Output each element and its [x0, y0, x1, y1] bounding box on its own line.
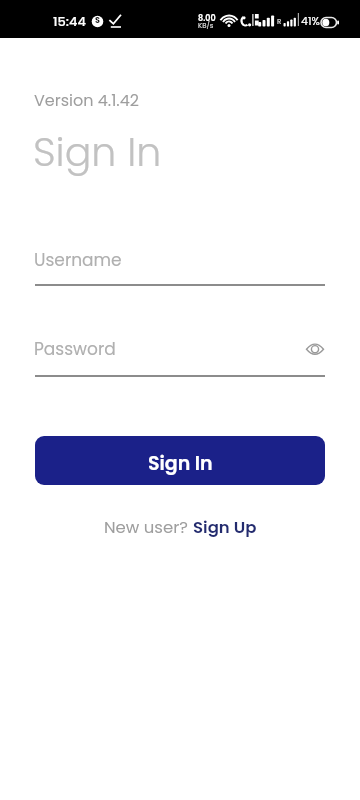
staticText: 8.00 — [198, 13, 216, 24]
button[interactable] — [306, 342, 324, 357]
button[interactable]: Sign In — [35, 436, 325, 485]
staticText: Password — [34, 337, 116, 361]
staticText: New user? — [104, 516, 193, 539]
staticText: Username — [34, 248, 122, 272]
staticText: Sign In — [148, 450, 213, 477]
staticText: S — [95, 15, 100, 26]
staticText: Sign In — [33, 125, 162, 180]
staticText: 41% — [301, 13, 320, 28]
staticText: KB/s — [198, 21, 214, 31]
button[interactable] — [35, 336, 325, 377]
button[interactable] — [35, 246, 325, 286]
staticText: R — [277, 17, 282, 27]
staticText: 15:44 — [53, 12, 86, 30]
staticText: Version 4.1.42 — [34, 89, 139, 111]
button[interactable]: Sign Up — [193, 516, 257, 539]
